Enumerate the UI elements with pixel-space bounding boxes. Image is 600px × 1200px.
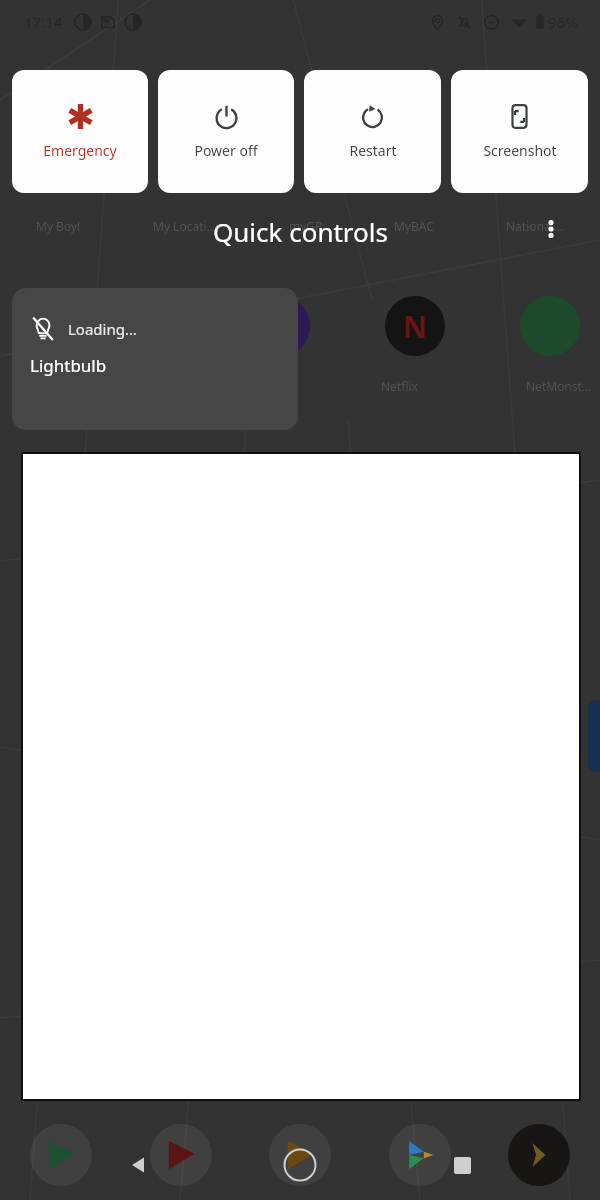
staticText: My Locati… [153, 218, 217, 234]
staticText: 96% [548, 12, 578, 32]
staticText: Loading… [68, 319, 137, 339]
button[interactable]: Screenshot [451, 70, 588, 193]
staticText: Emergency [43, 141, 117, 160]
button[interactable]: Power off [158, 70, 294, 193]
staticText: myGP [289, 218, 323, 234]
staticText: Power off [194, 141, 258, 160]
staticText: Restart [349, 141, 397, 160]
button[interactable]: Restart [304, 70, 441, 193]
staticText: 17:14 [24, 12, 63, 32]
staticText: MyBAC [394, 218, 434, 234]
staticText: National… [506, 218, 564, 234]
staticText: Quick controls [213, 214, 388, 249]
button[interactable]: Back [119, 1145, 159, 1185]
button[interactable]: Emergency [12, 70, 148, 193]
staticText: Screenshot [483, 141, 557, 160]
staticText: NetMonst… [526, 378, 592, 394]
staticText: N [403, 306, 428, 347]
staticText: Netflix [381, 378, 418, 394]
button[interactable]: Recents [442, 1145, 482, 1185]
button[interactable]: Loading… [12, 288, 298, 430]
button[interactable]: More options [536, 214, 566, 244]
staticText: My Boy! [36, 218, 81, 234]
staticText: Lightbulb [30, 354, 107, 377]
button[interactable]: Home [277, 1142, 323, 1188]
